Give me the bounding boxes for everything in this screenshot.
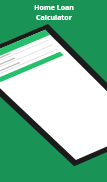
staticText: Home Loan: [34, 3, 74, 13]
staticText: Calculator: [36, 13, 72, 23]
